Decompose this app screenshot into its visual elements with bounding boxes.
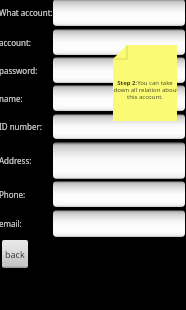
button[interactable]: What account: — [53, 0, 185, 26]
staticText: ID number: — [0, 121, 42, 132]
staticText: email: — [0, 218, 22, 229]
staticText: Address: — [0, 155, 32, 166]
staticText: account: — [0, 37, 31, 48]
button[interactable]: Address: — [53, 142, 185, 179]
button[interactable]: ID number: — [53, 114, 185, 139]
staticText: Phone: — [0, 189, 26, 200]
button[interactable]: Phone: — [0, 181, 53, 207]
button[interactable]: What account: — [0, 0, 53, 26]
staticText: down all relation about — [113, 86, 177, 94]
staticText: What account: — [0, 7, 53, 18]
staticText: Step 2:You can take — [117, 79, 173, 87]
button[interactable]: password: — [0, 57, 53, 83]
button[interactable]: Hint note — [113, 45, 177, 121]
staticText: this account. — [127, 93, 163, 101]
button[interactable]: password: — [53, 57, 185, 83]
staticText: name: — [0, 93, 23, 104]
button[interactable]: name: — [53, 85, 185, 111]
button[interactable]: email: — [53, 210, 185, 237]
staticText: password: — [0, 65, 38, 76]
button[interactable]: ID number: — [0, 114, 53, 139]
button[interactable]: Phone: — [53, 181, 185, 207]
button[interactable]: back — [2, 240, 28, 268]
staticText: back — [5, 248, 25, 260]
button[interactable]: name: — [0, 85, 53, 111]
button[interactable]: email: — [0, 210, 53, 237]
button[interactable]: account: — [53, 29, 185, 55]
button[interactable]: Address: — [0, 142, 53, 179]
button[interactable]: account: — [0, 29, 53, 55]
